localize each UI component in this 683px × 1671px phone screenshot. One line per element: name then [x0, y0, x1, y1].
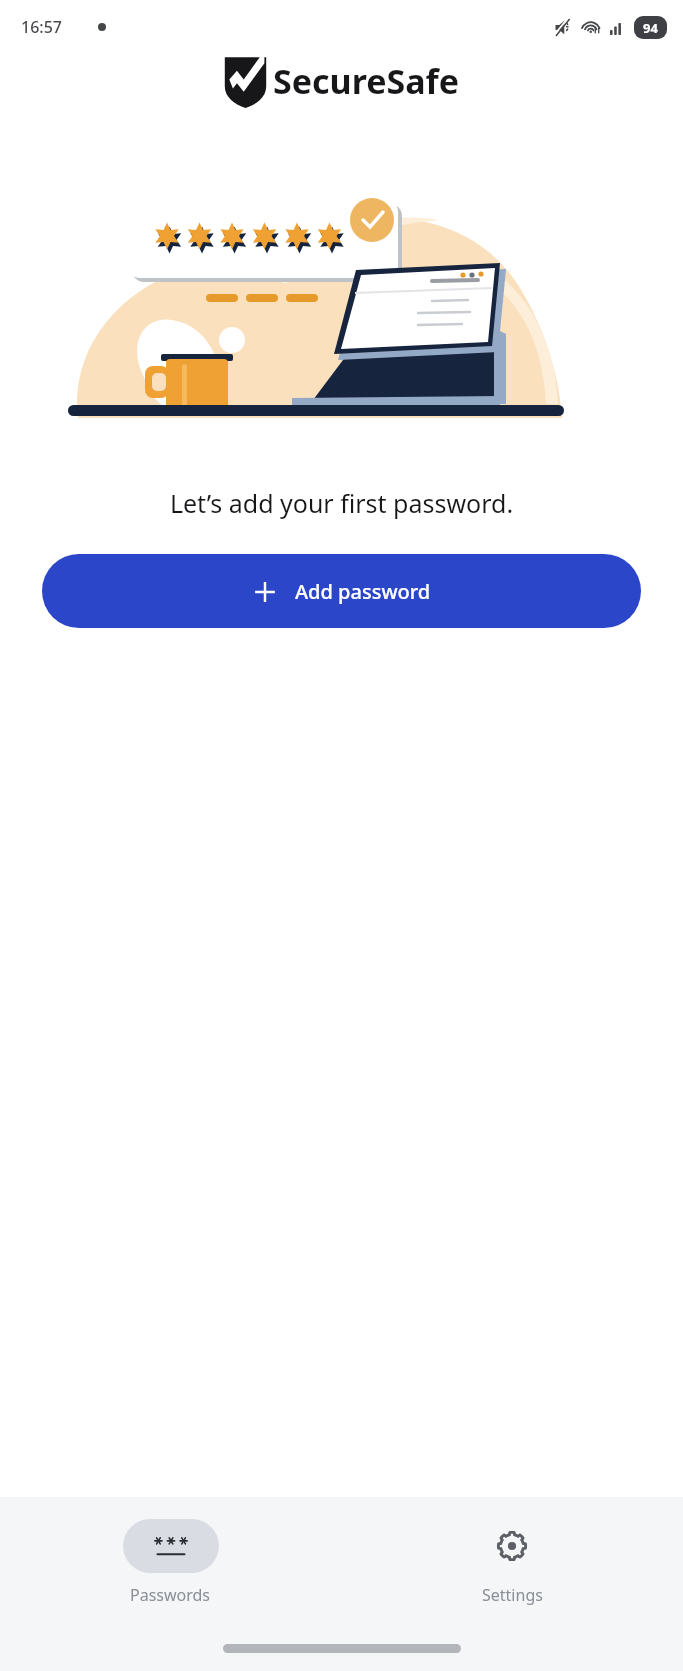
- staticText: SecureSafe: [273, 58, 460, 104]
- other: Passwords: [150, 1530, 192, 1562]
- button[interactable]: Settings: [341, 1497, 683, 1606]
- button[interactable]: Passwords: [0, 1497, 341, 1606]
- staticText: 16:57: [21, 16, 62, 38]
- staticText: Add password: [295, 578, 431, 605]
- button[interactable]: Add password: [42, 554, 641, 628]
- staticText: Let’s add your first password.: [0, 486, 683, 520]
- staticText: Settings: [482, 1584, 543, 1606]
- other: Settings: [495, 1529, 529, 1563]
- staticText: Passwords: [130, 1584, 211, 1606]
- staticText: 94: [643, 19, 658, 37]
